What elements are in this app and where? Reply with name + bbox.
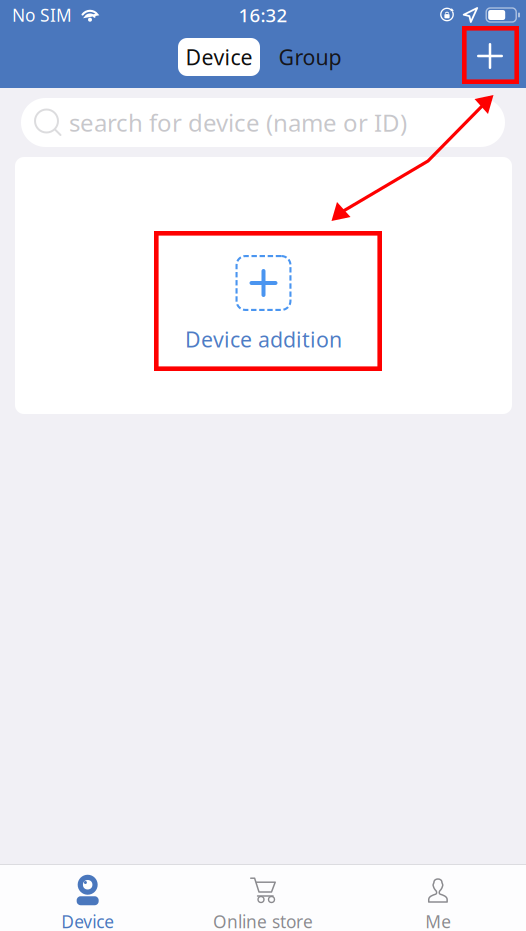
staticText: 16:32 xyxy=(238,3,287,27)
button[interactable]: Device xyxy=(0,865,175,931)
button[interactable]: Group xyxy=(260,38,360,76)
staticText: Group xyxy=(278,43,341,71)
staticText: Device xyxy=(61,910,114,931)
staticText: Device xyxy=(185,43,252,71)
staticText: Device addition xyxy=(185,325,342,353)
staticText: Online store xyxy=(213,910,313,931)
button[interactable]: Me xyxy=(351,865,526,931)
staticText: Me xyxy=(425,910,451,931)
button[interactable]: Device xyxy=(178,38,260,76)
button[interactable]: Device addition xyxy=(150,231,377,368)
staticText: No SIM xyxy=(12,3,72,26)
button[interactable]: Online store xyxy=(175,865,351,931)
button[interactable]: search for device (name or ID) xyxy=(21,98,505,147)
staticText: search for device (name or ID) xyxy=(69,107,407,138)
button[interactable]: Add device xyxy=(462,28,518,84)
